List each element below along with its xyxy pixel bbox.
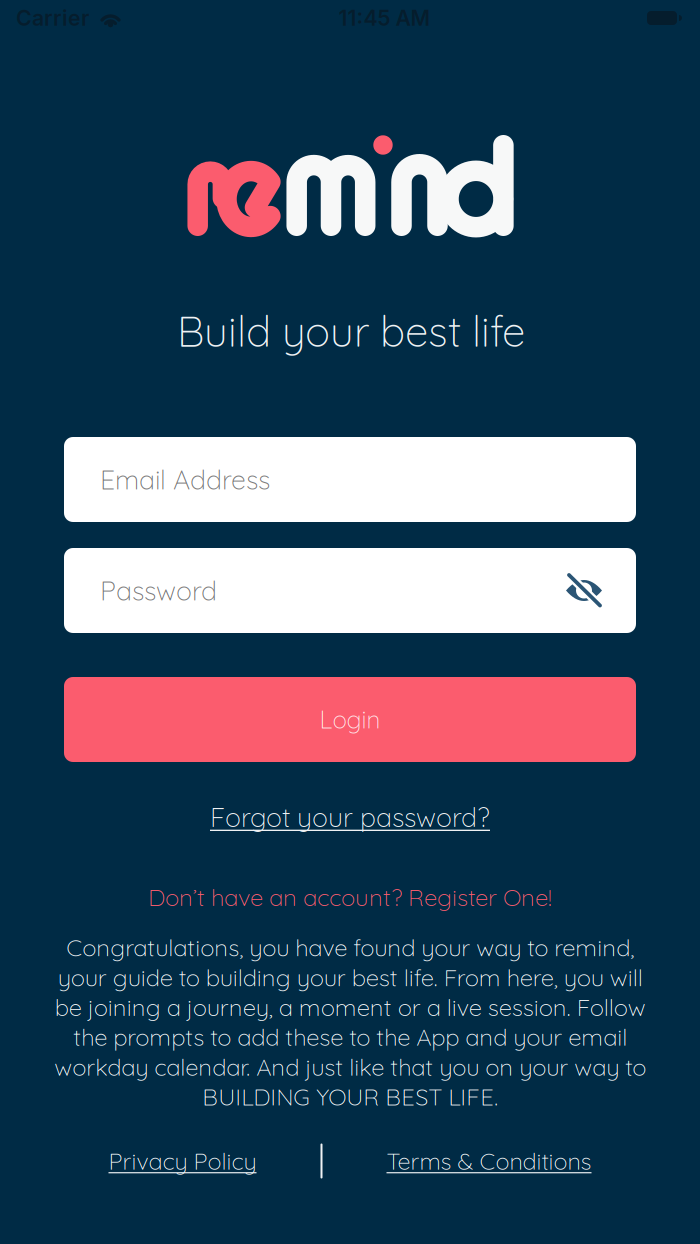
- staticText: Email Address: [100, 463, 270, 496]
- staticText: Congratulations, you have found your way…: [54, 932, 646, 1111]
- button[interactable]: Email Address: [64, 437, 636, 522]
- staticText: Privacy Policy: [108, 1146, 256, 1176]
- staticText: Carrier: [16, 5, 89, 31]
- staticText: Build your best life: [177, 305, 525, 357]
- button[interactable]: Password: [64, 548, 636, 633]
- staticText: Don’t have an account? Register One!: [148, 882, 552, 912]
- button[interactable]: Forgot your password?: [210, 800, 490, 834]
- staticText: Forgot your password?: [210, 800, 490, 834]
- button[interactable]: Login: [64, 677, 636, 762]
- button[interactable]: Don’t have an account? Register One!: [148, 882, 552, 912]
- staticText: Terms & Conditions: [386, 1146, 591, 1176]
- staticText: 11:45 AM: [338, 5, 430, 31]
- staticText: Password: [100, 574, 217, 607]
- staticText: Login: [319, 704, 380, 735]
- button[interactable]: Terms & Conditions: [386, 1146, 591, 1176]
- button[interactable]: Privacy Policy: [108, 1146, 256, 1176]
